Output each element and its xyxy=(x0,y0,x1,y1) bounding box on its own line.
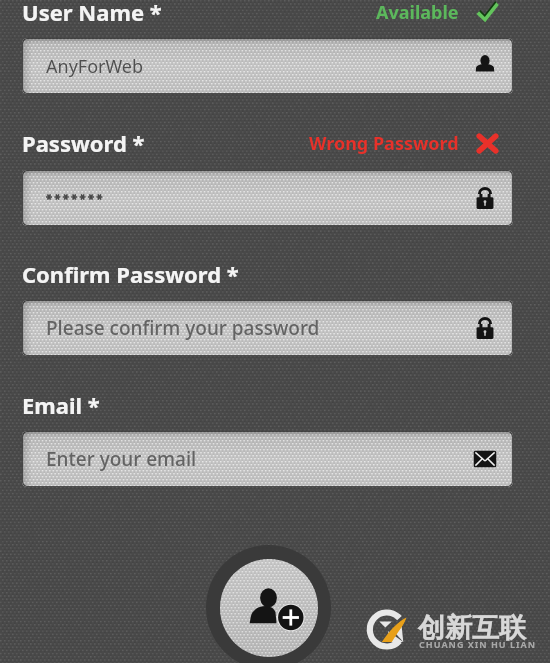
button[interactable]: Enter your email xyxy=(22,431,513,487)
staticText: 创新互联 xyxy=(418,611,526,645)
button[interactable]: Please confirm your password xyxy=(22,300,513,356)
button[interactable] xyxy=(22,170,513,226)
staticText: Please confirm your password xyxy=(46,315,320,341)
staticText: CHUANG XIN HU LIAN xyxy=(419,638,537,650)
staticText: Password * xyxy=(22,128,145,158)
staticText: AnyForWeb xyxy=(46,54,144,79)
button[interactable]: AnyForWeb xyxy=(22,38,513,94)
staticText: Wrong Password xyxy=(309,131,459,156)
button[interactable]: Add user xyxy=(206,545,331,663)
staticText: User Name * xyxy=(22,0,162,27)
staticText: Enter your email xyxy=(46,446,197,472)
staticText: Available xyxy=(376,0,459,25)
staticText: Confirm Password * xyxy=(22,259,239,289)
staticText: Email * xyxy=(22,390,100,420)
